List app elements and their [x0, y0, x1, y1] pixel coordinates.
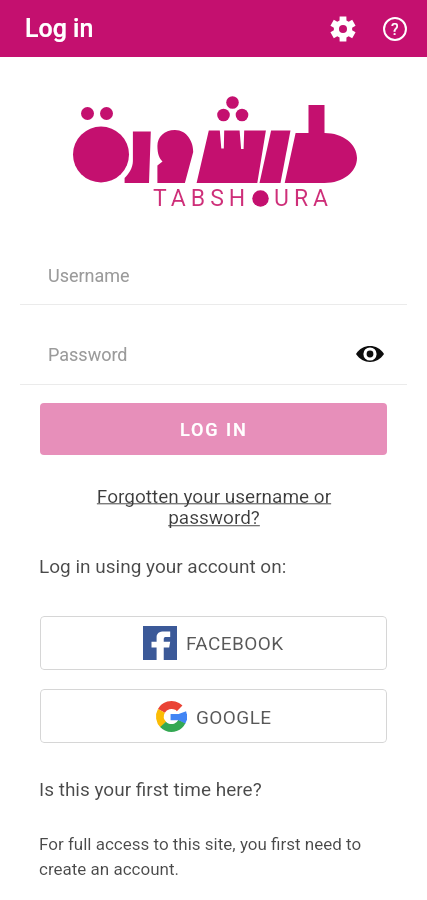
- button[interactable]: Show password: [352, 336, 388, 372]
- staticText: TABSH: [153, 185, 251, 212]
- staticText: ?: [391, 20, 399, 39]
- staticText: For full access to this site, you first …: [39, 834, 379, 879]
- button[interactable]: Username: [20, 260, 407, 304]
- staticText: Log in: [25, 14, 317, 43]
- staticText: FACEBOOK: [186, 632, 284, 654]
- button[interactable]: Forgotten your username or password?: [90, 485, 338, 529]
- staticText: URA: [274, 185, 334, 212]
- staticText: LOG IN: [180, 419, 248, 440]
- staticText: Log in using your account on:: [39, 555, 287, 577]
- button[interactable]: Password: [20, 305, 407, 384]
- staticText: Is this your first time here?: [39, 778, 262, 800]
- button[interactable]: Help: [369, 3, 421, 55]
- button[interactable]: FACEBOOK: [40, 616, 387, 670]
- staticText: Forgotten your username or password?: [90, 485, 338, 529]
- staticText: Username: [48, 265, 130, 286]
- button[interactable]: Settings: [317, 3, 369, 55]
- button[interactable]: GOOGLE: [40, 689, 387, 743]
- staticText: Password: [48, 344, 128, 365]
- button[interactable]: LOG IN: [40, 403, 387, 455]
- staticText: GOOGLE: [196, 706, 272, 728]
